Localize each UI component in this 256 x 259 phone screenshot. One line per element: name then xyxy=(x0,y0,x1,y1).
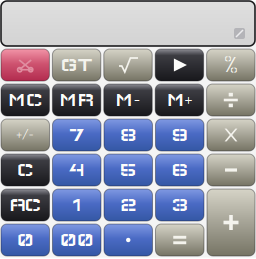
button[interactable]: Cut xyxy=(1,49,49,81)
button[interactable]: 0 xyxy=(1,224,49,256)
button[interactable]: M+ xyxy=(155,84,204,116)
button[interactable]: Divide xyxy=(207,84,255,116)
staticText: +/- xyxy=(16,128,34,142)
staticText: 00 xyxy=(60,230,94,250)
staticText: 7 xyxy=(69,125,84,145)
staticText: 2 xyxy=(120,195,137,215)
staticText: 1 xyxy=(73,195,81,215)
button[interactable]: C xyxy=(1,154,49,186)
staticText: M- xyxy=(115,90,141,110)
button[interactable]: Subtract xyxy=(207,154,255,186)
button[interactable]: % xyxy=(207,49,255,81)
staticText: MR xyxy=(59,90,94,110)
button[interactable]: Multiply xyxy=(207,119,255,151)
button[interactable]: Square root xyxy=(104,49,152,81)
button[interactable]: Equals xyxy=(155,224,204,256)
button[interactable]: GT xyxy=(52,49,101,81)
button[interactable]: 9 xyxy=(155,119,204,151)
button[interactable]: Rotate display xyxy=(234,28,245,39)
staticText: % xyxy=(224,54,238,76)
button[interactable]: 6 xyxy=(155,154,204,186)
button[interactable]: Decimal point xyxy=(104,224,152,256)
staticText: C xyxy=(17,160,34,180)
button[interactable]: AC xyxy=(1,189,49,221)
button[interactable]: 2 xyxy=(104,189,152,221)
staticText: 8 xyxy=(120,125,137,145)
button[interactable]: 5 xyxy=(104,154,152,186)
staticText: M+ xyxy=(166,90,192,110)
staticText: 4 xyxy=(69,160,85,180)
staticText: AC xyxy=(9,195,41,215)
staticText: GT xyxy=(61,55,93,75)
button[interactable]: 3 xyxy=(155,189,204,221)
button[interactable]: Add xyxy=(207,189,255,256)
staticText: 6 xyxy=(171,160,188,180)
staticText: 3 xyxy=(171,195,188,215)
button[interactable]: +/- xyxy=(1,119,49,151)
staticText: MC xyxy=(8,90,43,110)
button[interactable]: MC xyxy=(1,84,49,116)
button[interactable]: Next xyxy=(155,49,204,81)
button[interactable]: 4 xyxy=(52,154,101,186)
staticText: 0 xyxy=(17,230,34,250)
staticText: 5 xyxy=(119,160,137,180)
button[interactable]: M- xyxy=(104,84,152,116)
button[interactable]: 7 xyxy=(52,119,101,151)
button[interactable]: MR xyxy=(52,84,101,116)
staticText: 9 xyxy=(171,125,188,145)
button[interactable]: 1 xyxy=(52,189,101,221)
button[interactable]: 8 xyxy=(104,119,152,151)
button[interactable]: 00 xyxy=(52,224,101,256)
